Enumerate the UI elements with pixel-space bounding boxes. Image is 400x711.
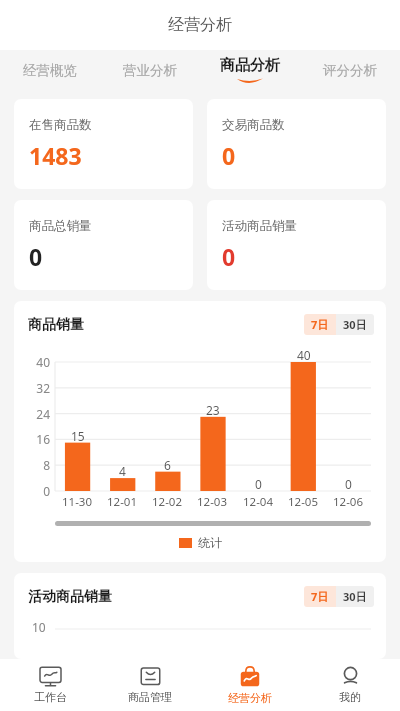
staticText: 评分分析 (323, 62, 377, 79)
staticText: 40 (36, 354, 50, 370)
staticText: 6 (164, 457, 171, 473)
staticText: 23 (206, 402, 220, 418)
staticText: 0 (222, 140, 236, 171)
button[interactable]: 7日 (304, 586, 336, 607)
staticText: 16 (36, 431, 50, 447)
staticText: 1483 (29, 140, 82, 171)
staticText: 12-06 (333, 494, 364, 510)
staticText: 活动商品销量 (28, 588, 112, 606)
button[interactable]: 工作台 (0, 659, 100, 711)
staticText: 经营分析 (228, 691, 272, 705)
staticText: 15 (71, 428, 85, 444)
button[interactable]: 我的 (300, 659, 400, 711)
staticText: 12-05 (288, 494, 319, 510)
staticText: 统计 (198, 535, 222, 550)
button[interactable]: 交易商品数 (207, 99, 386, 189)
staticText: 经营分析 (168, 15, 232, 35)
button[interactable]: 经营分析 (200, 659, 300, 711)
button[interactable]: 评分分析 (300, 50, 400, 90)
staticText: 工作台 (34, 690, 67, 704)
staticText: 30日 (343, 317, 367, 332)
staticText: 活动商品销量 (222, 218, 297, 234)
button[interactable]: 7日 (304, 314, 336, 335)
staticText: 12-03 (197, 494, 228, 510)
staticText: 0 (29, 241, 43, 272)
staticText: 商品分析 (220, 56, 280, 75)
staticText: 经营概览 (23, 62, 77, 79)
staticText: 7日 (311, 317, 329, 332)
staticText: 10 (32, 619, 46, 635)
button[interactable]: 30日 (336, 586, 374, 607)
staticText: 32 (36, 380, 50, 396)
staticText: 30日 (343, 589, 367, 604)
button[interactable]: 商品总销量 (14, 200, 193, 290)
staticText: 商品销量 (28, 316, 84, 334)
staticText: 12-01 (107, 494, 138, 510)
button[interactable]: 在售商品数 (14, 99, 193, 189)
staticText: 交易商品数 (222, 117, 285, 133)
staticText: 营业分析 (123, 62, 177, 79)
staticText: 商品总销量 (29, 218, 92, 234)
button[interactable]: 活动商品销量 (207, 200, 386, 290)
staticText: 商品管理 (128, 690, 172, 704)
staticText: 0 (255, 476, 262, 492)
button[interactable]: 30日 (336, 314, 374, 335)
button[interactable]: 商品管理 (100, 659, 200, 711)
staticText: 在售商品数 (29, 117, 92, 133)
staticText: 24 (36, 406, 50, 422)
staticText: 0 (222, 241, 236, 272)
button[interactable]: 营业分析 (100, 50, 200, 90)
staticText: 0 (345, 476, 352, 492)
staticText: 11-30 (62, 494, 93, 510)
staticText: 40 (297, 347, 311, 363)
staticText: 0 (43, 483, 50, 499)
button[interactable]: 商品分析 (200, 50, 300, 90)
staticText: 12-02 (152, 494, 183, 510)
staticText: 我的 (339, 690, 361, 704)
button[interactable]: 经营概览 (0, 50, 100, 90)
staticText: 4 (119, 463, 126, 479)
staticText: 7日 (311, 589, 329, 604)
staticText: 8 (43, 457, 50, 473)
staticText: 12-04 (243, 494, 274, 510)
